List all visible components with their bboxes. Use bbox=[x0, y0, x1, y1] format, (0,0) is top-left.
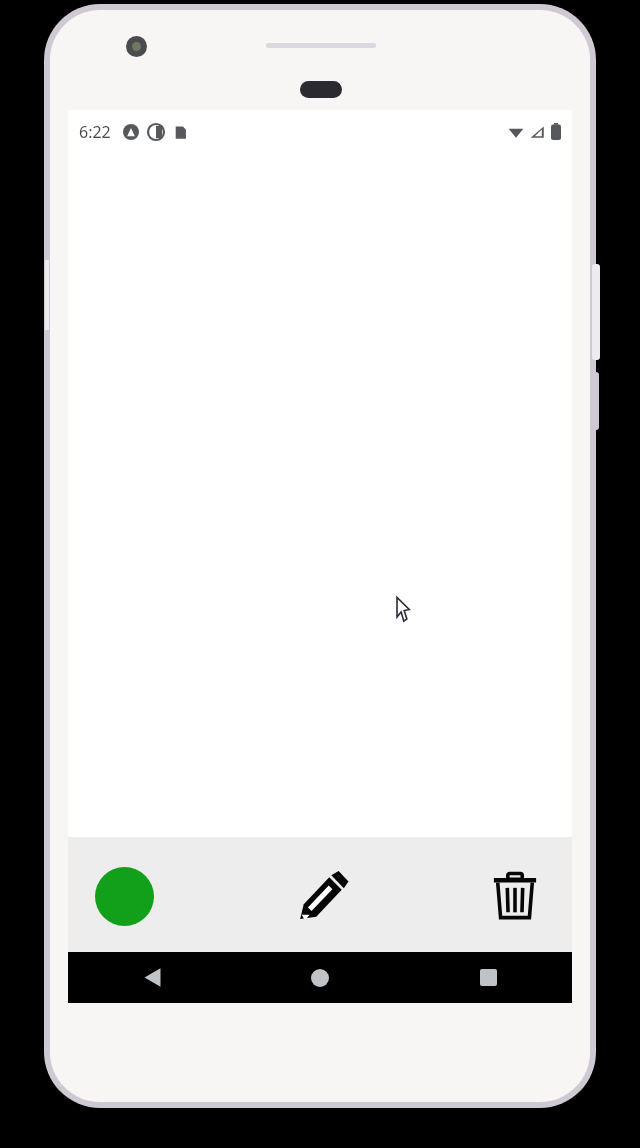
button[interactable]: Delete bbox=[482, 863, 548, 929]
button[interactable]: Back bbox=[68, 952, 236, 1003]
button[interactable]: Draw bbox=[290, 863, 356, 929]
button[interactable]: Home bbox=[236, 952, 404, 1003]
staticText: 6:22 bbox=[79, 121, 111, 143]
button[interactable]: Recent apps bbox=[404, 952, 572, 1003]
button[interactable]: Colour bbox=[95, 867, 154, 926]
